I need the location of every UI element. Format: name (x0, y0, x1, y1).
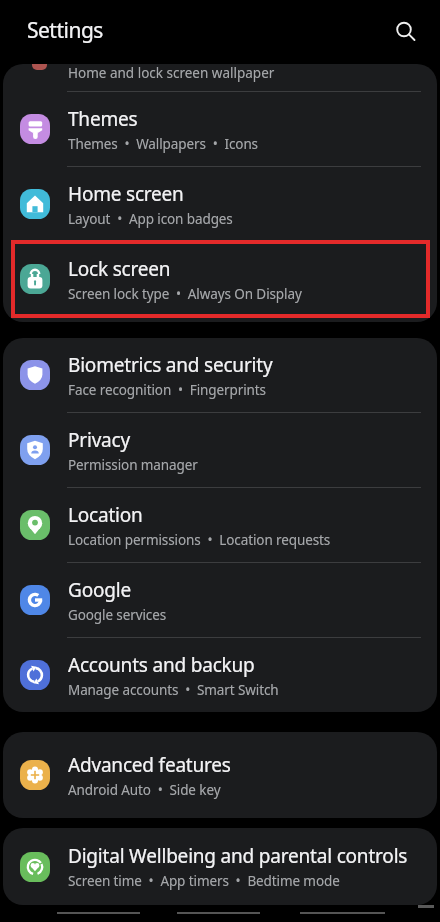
button[interactable]: Home and lock screen wallpaper (3, 64, 437, 91)
staticText: Google (68, 577, 131, 603)
staticText: Face recognition • Fingerprints (68, 381, 266, 399)
staticText: Screen time • App timers • Bedtime mode (68, 872, 340, 890)
staticText: Privacy (68, 427, 130, 453)
button[interactable]: Lock screen (3, 242, 437, 316)
staticText: Home and lock screen wallpaper (68, 64, 275, 82)
button[interactable]: Privacy (3, 413, 437, 487)
button[interactable]: Accounts and backup (3, 638, 437, 712)
staticText: Advanced features (68, 752, 231, 778)
staticText: Location permissions • Location requests (68, 531, 331, 549)
staticText: Lock screen (68, 256, 171, 282)
button[interactable]: Home screen (3, 167, 437, 241)
staticText: Digital Wellbeing and parental controls (68, 843, 408, 869)
staticText: Layout • App icon badges (68, 210, 233, 228)
button[interactable]: Advanced features (3, 732, 437, 818)
staticText: Home screen (68, 181, 184, 207)
staticText: Themes • Wallpapers • Icons (68, 135, 258, 153)
button[interactable]: Location (3, 488, 437, 562)
staticText: Accounts and backup (68, 652, 255, 678)
staticText: Settings (27, 16, 103, 45)
button[interactable]: Themes (3, 92, 437, 166)
staticText: Google services (68, 606, 167, 624)
staticText: Permission manager (68, 456, 198, 474)
button[interactable]: Google (3, 563, 437, 637)
staticText: Location (68, 502, 143, 528)
button[interactable] (390, 16, 418, 44)
button[interactable]: Digital Wellbeing and parental controls (3, 828, 437, 905)
staticText: Manage accounts • Smart Switch (68, 681, 279, 699)
staticText: Screen lock type • Always On Display (68, 285, 302, 303)
staticText: Biometrics and security (68, 352, 273, 378)
staticText: Android Auto • Side key (68, 781, 221, 799)
staticText: Themes (68, 106, 138, 132)
button[interactable]: Biometrics and security (3, 338, 437, 412)
